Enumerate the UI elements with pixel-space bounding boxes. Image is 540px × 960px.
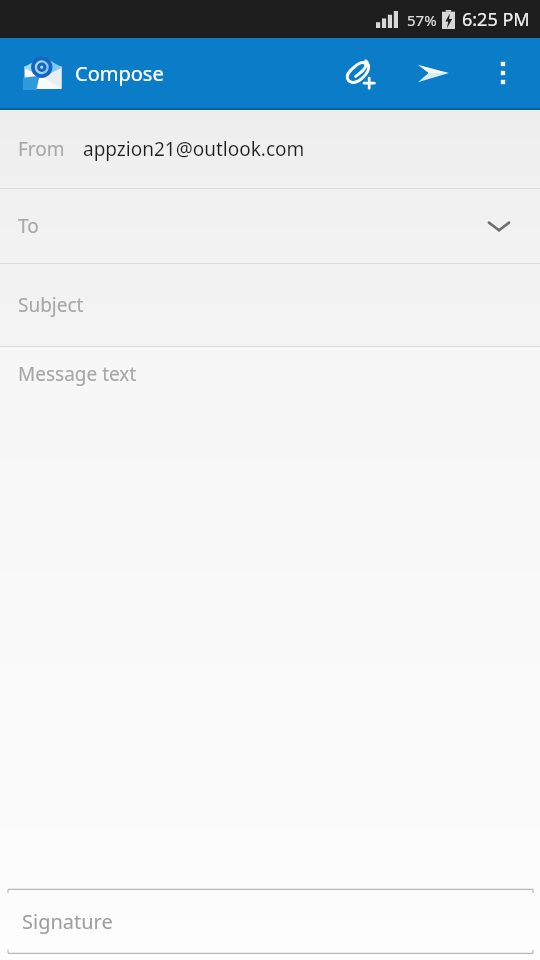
button[interactable]: Signature: [0, 894, 540, 949]
staticText: 57%: [407, 10, 437, 30]
button[interactable]: Show Cc and Bcc: [478, 205, 520, 247]
staticText: Message text: [18, 361, 137, 387]
button[interactable]: Message text: [0, 347, 540, 409]
staticText: 6:25 PM: [462, 7, 530, 32]
staticText: Signature: [22, 908, 113, 935]
button[interactable]: Attach: [336, 50, 382, 96]
staticText: appzion21@outlook.com: [83, 136, 305, 162]
button[interactable]: Compose: [22, 56, 170, 90]
staticText: Subject: [18, 292, 84, 318]
button[interactable]: Send: [410, 50, 456, 96]
button[interactable]: To: [0, 189, 540, 263]
button[interactable]: More options: [480, 50, 526, 96]
staticText: To: [18, 213, 39, 239]
button[interactable]: From: [0, 110, 540, 188]
staticText: Compose: [75, 60, 164, 87]
staticText: From: [18, 136, 65, 162]
button[interactable]: Subject: [0, 264, 540, 346]
